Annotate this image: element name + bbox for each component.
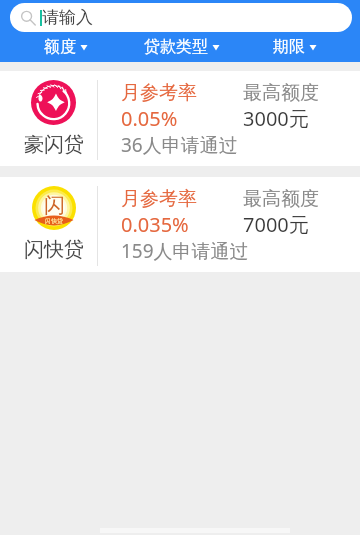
staticText: 0.035% <box>121 211 189 238</box>
staticText: 月参考率 <box>121 81 197 105</box>
button[interactable]: 闪 <box>0 177 360 272</box>
button[interactable]: 请输入 <box>10 3 352 32</box>
button[interactable]: 期限 <box>240 32 360 62</box>
staticText: 闪 <box>44 192 65 218</box>
staticText: 额度 <box>44 37 76 57</box>
staticText: 贷款类型 <box>144 37 208 57</box>
staticText: 期限 <box>273 37 305 57</box>
button[interactable]: 豪闪贷 <box>0 71 360 166</box>
staticText: 7000元 <box>243 211 309 238</box>
button[interactable]: 贷款类型 <box>120 32 240 62</box>
staticText: 月参考率 <box>121 187 197 211</box>
staticText: 3000元 <box>243 105 309 132</box>
staticText: 最高额度 <box>243 187 319 211</box>
staticText: 159人申请通过 <box>121 238 249 264</box>
staticText: 闪快贷 <box>24 237 84 262</box>
staticText: 0.05% <box>121 105 178 132</box>
staticText: 豪闪贷 <box>24 132 84 157</box>
staticText: 请输入 <box>42 7 93 28</box>
staticText: 闪快贷 <box>45 217 63 225</box>
staticText: 最高额度 <box>243 81 319 105</box>
staticText: 36人申请通过 <box>121 132 238 158</box>
button[interactable]: 额度 <box>0 32 120 62</box>
